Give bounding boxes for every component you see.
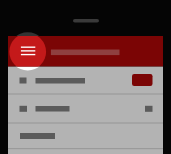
button[interactable] (8, 124, 163, 148)
button[interactable] (8, 95, 163, 123)
button[interactable] (8, 66, 163, 93)
button[interactable]: Open navigation menu (9, 33, 46, 70)
